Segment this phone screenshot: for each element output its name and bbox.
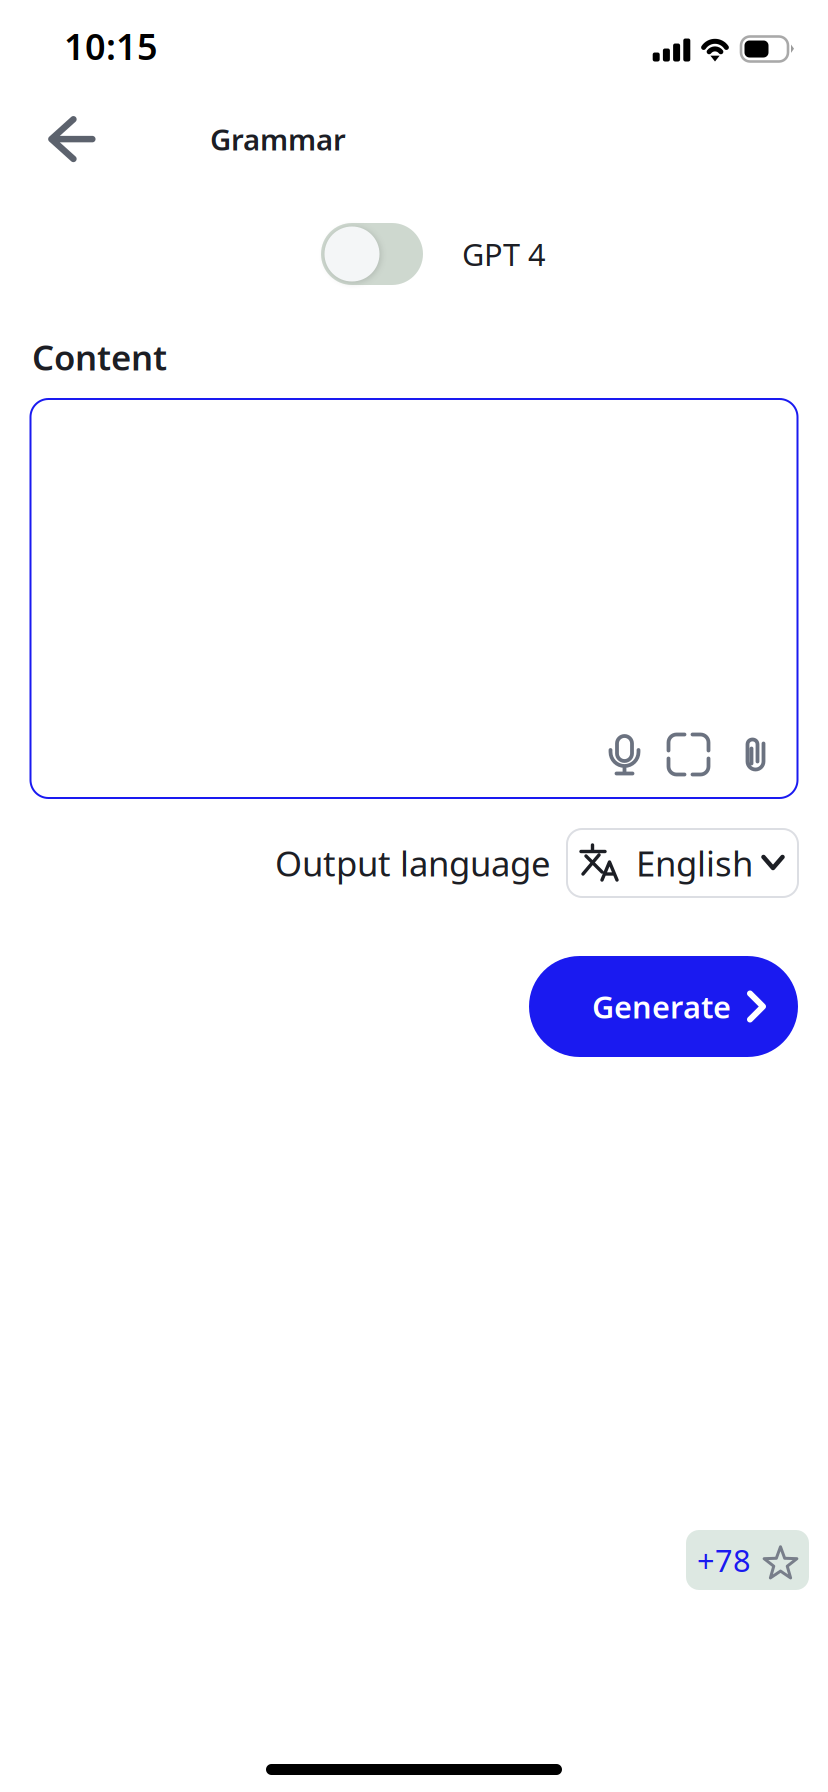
staticText: Content <box>32 334 167 380</box>
staticText: Generate <box>592 986 731 1027</box>
staticText: Grammar <box>210 119 346 158</box>
button[interactable]: Back <box>28 117 116 161</box>
button[interactable]: English <box>567 829 798 897</box>
staticText: English <box>636 840 753 886</box>
staticText: Output language <box>275 840 551 886</box>
button[interactable]: Attach file <box>745 736 767 772</box>
staticText: 10:15 <box>64 22 158 70</box>
button[interactable]: 78 points <box>686 1530 809 1590</box>
staticText: GPT 4 <box>462 234 546 274</box>
staticText: +78 <box>697 1540 751 1580</box>
button[interactable]: Dictate <box>610 734 638 775</box>
button[interactable]: GPT 4 <box>321 223 423 285</box>
button[interactable]: Scan text <box>668 734 707 774</box>
button[interactable]: Generate <box>529 956 798 1057</box>
